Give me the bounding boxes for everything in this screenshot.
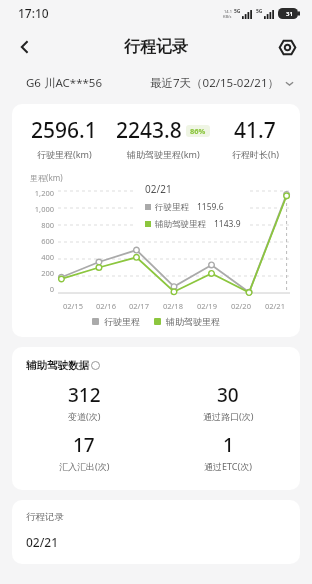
staticText: 变道(次) — [68, 410, 101, 422]
staticText: 辅助驾驶里程(km) — [127, 148, 200, 160]
staticText: 800 — [41, 220, 54, 230]
button[interactable]: 最近7天（02/15-02/21） — [150, 75, 294, 91]
staticText: 200 — [41, 268, 54, 278]
staticText: 辅助驾驶里程 — [166, 316, 220, 327]
staticText: 30 — [217, 382, 239, 408]
staticText: 2596.1 — [31, 116, 97, 145]
staticText: 行程时长(h) — [232, 148, 279, 160]
staticText: 1,200 — [34, 188, 54, 198]
staticText: 行驶里程 — [104, 316, 140, 327]
staticText: 行程记录 — [124, 37, 188, 57]
staticText: 86% — [190, 126, 206, 136]
button[interactable]: 辅助驾驶数据 — [26, 359, 100, 372]
staticText: 辅助驾驶数据 — [26, 359, 89, 372]
button[interactable]: Back — [6, 28, 44, 66]
staticText: 1 — [223, 432, 234, 458]
staticText: 31 — [286, 10, 293, 18]
staticText: 行驶里程(km) — [37, 148, 92, 160]
staticText: 312 — [68, 382, 101, 408]
staticText: 5G — [234, 8, 241, 15]
staticText: 02/16 — [96, 301, 116, 311]
staticText: 02/17 — [129, 301, 149, 311]
button[interactable]: 辅助驾驶里程 — [154, 316, 220, 327]
staticText: 17 — [73, 432, 95, 458]
staticText: 行驶里程 — [155, 202, 189, 213]
staticText: 1159.6 — [197, 201, 224, 213]
staticText: 里程(km) — [30, 172, 63, 183]
staticText: 1,000 — [34, 204, 54, 214]
staticText: 02/18 — [163, 301, 183, 311]
staticText: G6 川AC***56 — [26, 75, 102, 91]
staticText: 0 — [49, 284, 54, 294]
staticText: 02/20 — [231, 301, 251, 311]
staticText: 17:10 — [18, 5, 49, 21]
staticText: 02/15 — [63, 301, 83, 311]
staticText: 02/19 — [197, 301, 217, 311]
staticText: 通过ETC(次) — [204, 460, 252, 472]
staticText: 2243.8 — [116, 116, 182, 145]
staticText: KB/s — [223, 14, 232, 19]
staticText: 1143.9 — [214, 218, 241, 230]
staticText: 最近7天（02/15-02/21） — [150, 75, 279, 91]
button[interactable]: Settings — [268, 28, 306, 66]
staticText: 41.7 — [234, 116, 276, 145]
button[interactable]: G6 川AC***56 — [26, 75, 102, 91]
other: Info — [91, 361, 100, 370]
staticText: 02/21 — [265, 301, 285, 311]
staticText: 通过路口(次) — [203, 410, 254, 422]
staticText: 02/21 — [26, 534, 59, 550]
staticText: 600 — [41, 236, 54, 246]
staticText: 02/21 — [145, 182, 172, 196]
staticText: 辅助驾驶里程 — [155, 219, 206, 230]
staticText: 14.1 — [224, 9, 232, 14]
staticText: 400 — [41, 252, 54, 262]
button[interactable]: 行驶里程 — [92, 316, 140, 327]
staticText: 汇入汇出(次) — [59, 460, 110, 472]
staticText: 5G — [256, 8, 263, 15]
staticText: 行程记录 — [26, 511, 64, 523]
